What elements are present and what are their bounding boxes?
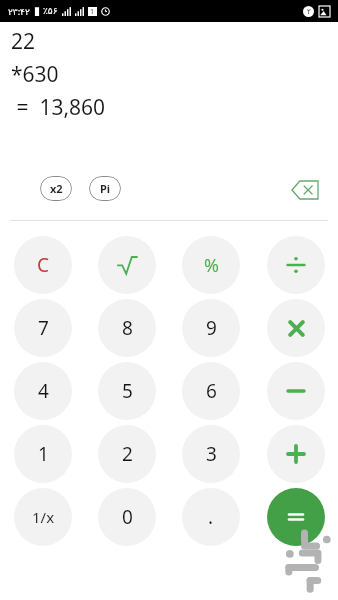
- staticText: 1/x: [32, 507, 55, 527]
- staticText: = 13,860: [11, 93, 106, 122]
- staticText: C: [37, 252, 50, 278]
- button[interactable]: C: [14, 236, 72, 294]
- staticText: x2: [50, 181, 63, 196]
- button[interactable]: .: [182, 488, 240, 546]
- staticText: ۲: [307, 8, 311, 16]
- staticText: 1: [38, 441, 49, 467]
- button[interactable]: Multiply: [267, 299, 325, 357]
- button[interactable]: Pi: [89, 176, 121, 201]
- staticText: ۲۳:۴۲: [8, 5, 30, 17]
- staticText: 4: [38, 378, 49, 404]
- button[interactable]: 7: [14, 299, 72, 357]
- staticText: %: [204, 253, 219, 278]
- button[interactable]: 0: [98, 488, 156, 546]
- button[interactable]: 1: [14, 425, 72, 483]
- button[interactable]: x2: [40, 176, 72, 201]
- staticText: 8: [122, 315, 133, 341]
- button[interactable]: 8: [98, 299, 156, 357]
- button[interactable]: %: [182, 236, 240, 294]
- staticText: 2: [122, 441, 133, 467]
- button[interactable]: Minus: [267, 362, 325, 420]
- staticText: 22: [11, 27, 36, 56]
- staticText: 1: [90, 7, 95, 16]
- staticText: Pi: [100, 181, 111, 196]
- button[interactable]: 5: [98, 362, 156, 420]
- staticText: .: [208, 504, 214, 530]
- button[interactable]: Backspace: [288, 176, 322, 204]
- button[interactable]: 2: [98, 425, 156, 483]
- staticText: *630: [11, 60, 59, 89]
- staticText: 7: [38, 315, 49, 341]
- button[interactable]: 4: [14, 362, 72, 420]
- button[interactable]: 9: [182, 299, 240, 357]
- button[interactable]: Plus: [267, 425, 325, 483]
- staticText: 3: [206, 441, 217, 467]
- button[interactable]: Divide: [267, 236, 325, 294]
- button[interactable]: Equals: [267, 488, 325, 546]
- staticText: ٪۵۶: [43, 6, 58, 16]
- staticText: 9: [206, 315, 217, 341]
- button[interactable]: 6: [182, 362, 240, 420]
- staticText: 5: [122, 378, 133, 404]
- button[interactable]: 1/x: [14, 488, 72, 546]
- button[interactable]: 3: [182, 425, 240, 483]
- staticText: 6: [206, 378, 217, 404]
- staticText: 0: [122, 504, 133, 530]
- button[interactable]: Square root: [98, 236, 156, 294]
